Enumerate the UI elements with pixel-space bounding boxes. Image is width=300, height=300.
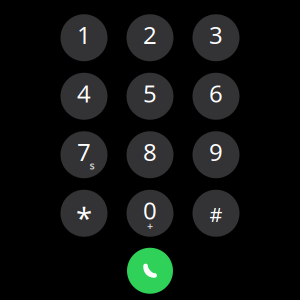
button[interactable]: 8 — [126, 131, 173, 178]
staticText: * — [76, 198, 92, 237]
staticText: 8 — [143, 136, 157, 168]
button[interactable]: * — [60, 190, 107, 237]
staticText: 3 — [209, 19, 223, 51]
staticText: 2 — [143, 19, 157, 51]
button[interactable]: 4 — [60, 73, 107, 120]
button[interactable]: 0 — [126, 190, 173, 237]
button[interactable]: 9 — [192, 131, 239, 178]
button[interactable]: Call — [127, 248, 173, 294]
button[interactable]: 6 — [192, 73, 239, 120]
staticText: 1 — [77, 19, 91, 51]
staticText: 6 — [209, 77, 223, 109]
button[interactable]: 3 — [192, 14, 239, 61]
staticText: 5 — [143, 77, 157, 109]
staticText: 4 — [77, 77, 91, 109]
button[interactable]: # — [192, 190, 239, 237]
button[interactable]: 5 — [126, 73, 173, 120]
staticText: + — [147, 219, 153, 233]
staticText: 9 — [209, 136, 223, 168]
staticText: 7 — [77, 136, 91, 168]
staticText: s — [89, 158, 94, 172]
button[interactable]: 1 — [60, 14, 107, 61]
staticText: 0 — [143, 194, 157, 226]
button[interactable]: 2 — [126, 14, 173, 61]
button[interactable]: 7 — [60, 131, 107, 178]
staticText: # — [209, 201, 222, 228]
